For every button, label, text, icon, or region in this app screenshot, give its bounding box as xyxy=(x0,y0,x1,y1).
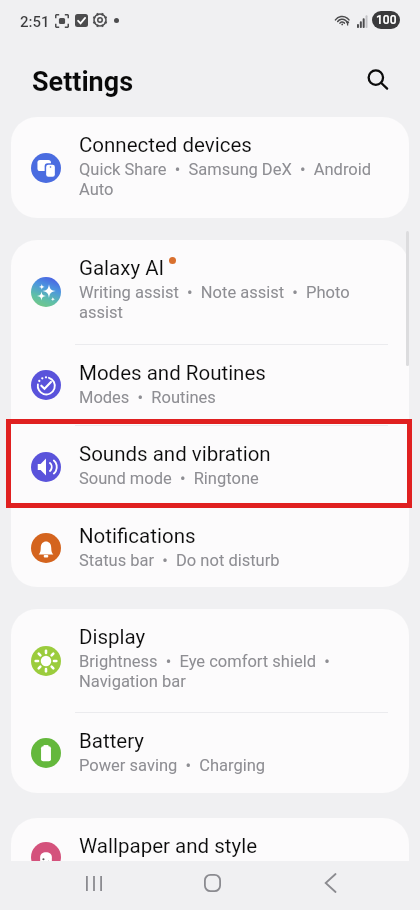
staticText: Battery xyxy=(79,729,145,753)
staticText: Status bar • Do not disturb xyxy=(79,551,280,570)
staticText: Settings xyxy=(32,66,134,98)
button[interactable]: Connected devices xyxy=(11,117,409,218)
staticText: 100 xyxy=(376,13,397,27)
button[interactable]: Recent apps xyxy=(62,867,126,899)
staticText: Wallpaper and style xyxy=(79,834,258,858)
button[interactable]: Sounds and vibration xyxy=(11,426,409,507)
button[interactable]: Modes and Routines xyxy=(11,345,409,425)
staticText: Power saving • Charging xyxy=(79,756,266,775)
staticText: Galaxy AI xyxy=(79,256,165,280)
staticText: Sound mode • Ringtone xyxy=(79,469,259,488)
button[interactable]: Home xyxy=(180,867,244,899)
staticText: Notifications xyxy=(79,524,196,548)
staticText: Brightness • Eye comfort shield • Naviga… xyxy=(79,652,383,691)
staticText: 2:51 xyxy=(20,13,50,31)
button[interactable]: Battery xyxy=(11,713,409,793)
button[interactable]: Search xyxy=(358,60,398,100)
staticText: Modes • Routines xyxy=(79,388,216,407)
button[interactable]: Display xyxy=(11,609,409,712)
staticText: Connected devices xyxy=(79,133,252,157)
staticText: Quick Share • Samsung DeX • Android Auto xyxy=(79,160,383,199)
staticText: Sounds and vibration xyxy=(79,442,271,466)
button[interactable]: Galaxy AI xyxy=(11,240,409,344)
button[interactable]: Notifications xyxy=(11,508,409,587)
staticText: Modes and Routines xyxy=(79,361,266,385)
staticText: Writing assist • Note assist • Photo ass… xyxy=(79,283,383,322)
staticText: Display xyxy=(79,625,146,649)
button[interactable]: Wallpaper and style xyxy=(11,818,409,861)
button[interactable]: Back xyxy=(298,867,362,899)
